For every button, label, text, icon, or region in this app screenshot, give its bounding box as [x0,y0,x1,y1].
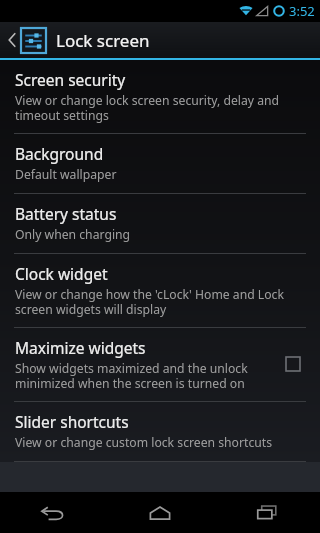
other: Back [5,25,19,55]
staticText: View or change how the 'cLock' Home and … [15,286,308,317]
button[interactable]: Slider shortcuts [0,402,320,461]
staticText: View or change lock screen security, del… [15,92,308,123]
staticText: Battery status [15,203,117,224]
staticText: Slider shortcuts [15,411,129,432]
button[interactable]: Recent apps [213,492,320,533]
button[interactable]: Maximize widgets toggle [278,349,308,379]
button[interactable]: Background [0,134,320,193]
staticText: Lock screen [56,29,150,52]
staticText: Default wallpaper [15,166,117,183]
staticText: Show widgets maximized and the unlock mi… [15,360,268,391]
staticText: View or change custom lock screen shortc… [15,434,273,451]
staticText: Maximize widgets [15,337,146,358]
staticText: Screen security [15,69,126,90]
staticText: Background [15,143,104,164]
button[interactable]: Screen security [0,60,320,133]
button[interactable]: Battery status [0,194,320,253]
button[interactable]: Clock widget [0,254,320,327]
staticText: Only when charging [15,226,131,243]
button[interactable]: Back [0,22,320,58]
button[interactable]: Back [0,492,106,533]
button[interactable]: Home [106,492,213,533]
staticText: 3:52 [289,2,315,20]
staticText: Clock widget [15,263,108,284]
button[interactable]: Maximize widgets [0,328,320,401]
